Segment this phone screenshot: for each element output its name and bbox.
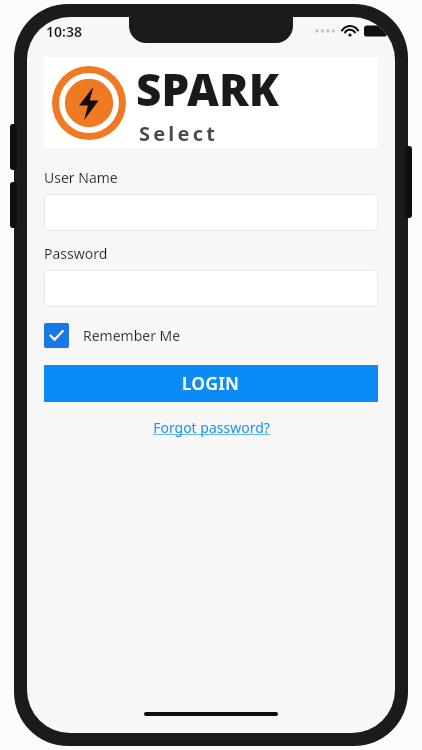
staticText: LOGIN xyxy=(182,372,240,395)
staticText: Select xyxy=(139,120,219,147)
button[interactable]: Password field xyxy=(44,270,378,307)
staticText: SPARK xyxy=(136,59,279,119)
button[interactable]: LOGIN xyxy=(44,365,378,402)
staticText: 10:38 xyxy=(46,22,82,41)
staticText: Remember Me xyxy=(83,326,181,345)
button[interactable]: User Name field xyxy=(44,194,378,231)
button[interactable]: Forgot password? xyxy=(147,415,276,440)
staticText: Password xyxy=(44,244,108,263)
button[interactable]: Remember Me xyxy=(44,323,181,348)
staticText: Forgot password? xyxy=(153,418,270,437)
staticText: User Name xyxy=(44,168,118,187)
